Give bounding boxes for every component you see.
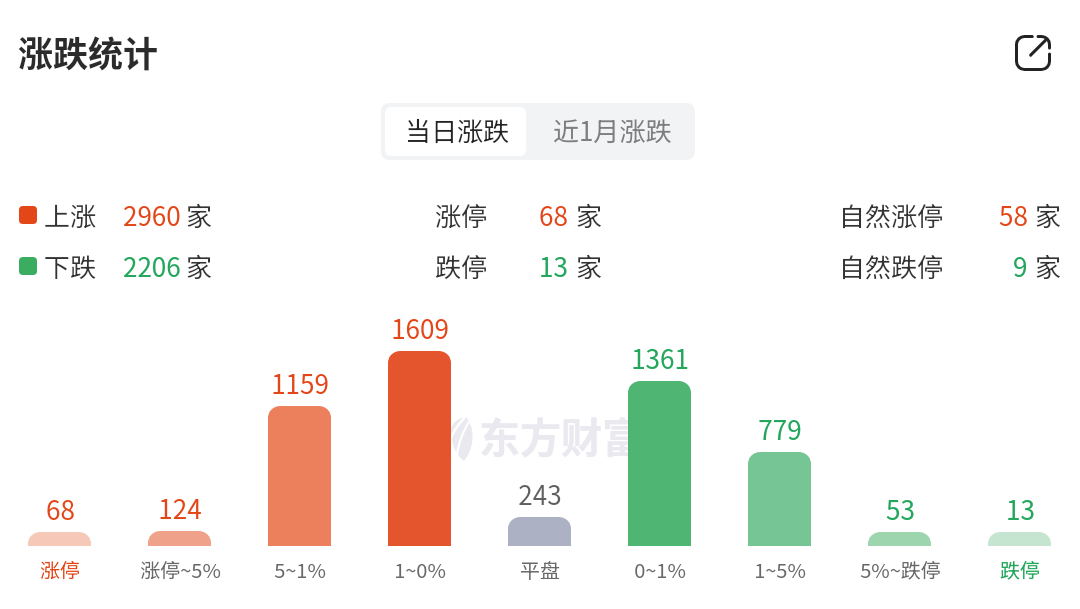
staticText: 243 bbox=[518, 475, 562, 513]
staticText: 涨跌统计 bbox=[18, 26, 159, 77]
staticText: 13 bbox=[539, 247, 568, 285]
staticText: 5~1% bbox=[274, 555, 326, 584]
button[interactable]: 近1月涨跌 bbox=[526, 107, 691, 156]
staticText: 68 bbox=[539, 196, 568, 234]
staticText: 1~0% bbox=[394, 555, 446, 584]
staticText: 0~1% bbox=[634, 555, 686, 584]
button[interactable]: Share bbox=[1009, 29, 1057, 77]
staticText: 58 bbox=[999, 196, 1028, 234]
staticText: 当日涨跌 bbox=[405, 111, 510, 149]
staticText: 东方财富 bbox=[479, 405, 643, 464]
staticText: 跌停 bbox=[1000, 555, 1040, 584]
staticText: 1~5% bbox=[754, 555, 806, 584]
staticText: 家 bbox=[186, 247, 213, 285]
staticText: 平盘 bbox=[520, 555, 560, 584]
staticText: 家 bbox=[576, 247, 603, 285]
staticText: 涨停~5% bbox=[140, 555, 221, 584]
staticText: 13 bbox=[1006, 490, 1035, 528]
staticText: 近1月涨跌 bbox=[553, 111, 672, 149]
staticText: 跌停 bbox=[435, 247, 488, 285]
staticText: 家 bbox=[186, 196, 213, 234]
staticText: 779 bbox=[758, 410, 802, 448]
staticText: 53 bbox=[886, 490, 915, 528]
staticText: 家 bbox=[1035, 196, 1062, 234]
staticText: 自然跌停 bbox=[839, 247, 944, 285]
staticText: 自然涨停 bbox=[839, 196, 944, 234]
staticText: 家 bbox=[576, 196, 603, 234]
staticText: 1609 bbox=[391, 309, 449, 347]
staticText: 5%~跌停 bbox=[860, 555, 941, 584]
staticText: 上涨 bbox=[44, 196, 97, 234]
button[interactable]: 当日涨跌 bbox=[385, 107, 526, 156]
staticText: 涨停 bbox=[435, 196, 488, 234]
staticText: 1361 bbox=[631, 339, 689, 377]
staticText: 涨停 bbox=[40, 555, 80, 584]
staticText: 家 bbox=[1035, 247, 1062, 285]
staticText: 2206 bbox=[123, 247, 181, 285]
staticText: 下跌 bbox=[44, 247, 97, 285]
staticText: 2960 bbox=[123, 196, 181, 234]
staticText: 124 bbox=[158, 489, 202, 527]
staticText: 68 bbox=[46, 490, 75, 528]
staticText: 9 bbox=[1013, 247, 1028, 285]
staticText: 1159 bbox=[271, 364, 329, 402]
